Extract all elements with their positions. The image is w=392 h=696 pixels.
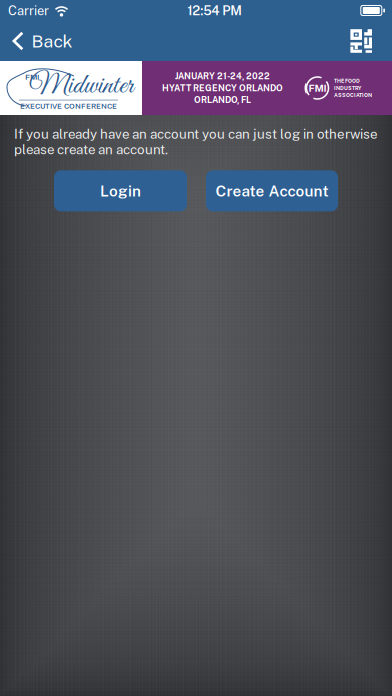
staticText: JANUARY 21-24, 2022	[175, 71, 270, 81]
staticText: ASSOCIATION	[334, 92, 372, 98]
staticText: EXECUTIVE CONFERENCE	[20, 101, 117, 110]
staticText: HYATT REGENCY ORLANDO	[162, 83, 283, 93]
button[interactable]: Back	[0, 21, 83, 61]
button[interactable]: Create Account	[206, 170, 338, 211]
staticText: Back	[32, 31, 73, 51]
staticText: Login	[100, 182, 141, 200]
staticText: Midwinter	[29, 68, 133, 104]
staticText: FMI	[25, 72, 39, 82]
staticText: 12:54 PM	[187, 3, 242, 18]
staticText: Carrier	[8, 3, 49, 18]
staticText: ORLANDO, FL	[194, 95, 251, 105]
staticText: If you already have an account you can j…	[14, 126, 377, 157]
staticText: INDUSTRY	[334, 85, 361, 91]
staticText: Create Account	[215, 182, 328, 200]
staticText: FMI	[308, 82, 326, 94]
button[interactable]: Scan QR code	[336, 21, 392, 61]
staticText: THE FOOD	[334, 78, 360, 84]
button[interactable]: Login	[54, 170, 187, 211]
